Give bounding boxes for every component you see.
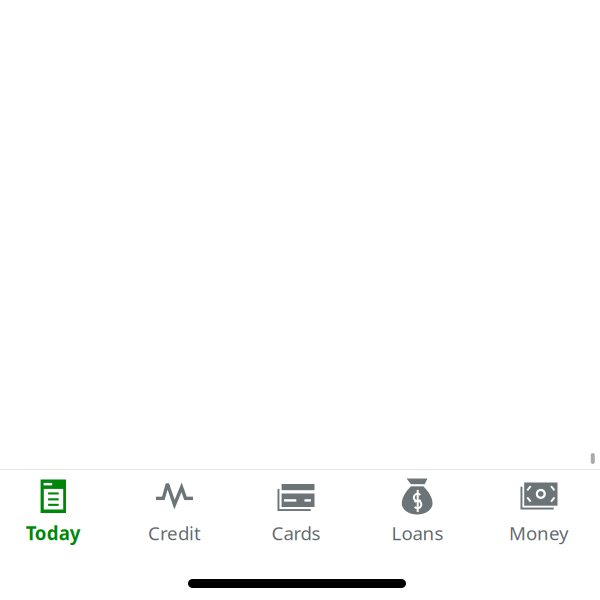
staticText: Money: [509, 521, 569, 545]
staticText: Cards: [271, 521, 320, 545]
button[interactable]: Loans: [357, 470, 478, 550]
staticText: Credit: [148, 521, 201, 545]
button[interactable]: Money: [478, 470, 600, 550]
button[interactable]: Credit: [114, 470, 235, 550]
staticText: Today: [26, 521, 81, 545]
staticText: Loans: [391, 521, 443, 545]
button[interactable]: Cards: [235, 470, 357, 550]
button[interactable]: Today: [0, 470, 114, 550]
